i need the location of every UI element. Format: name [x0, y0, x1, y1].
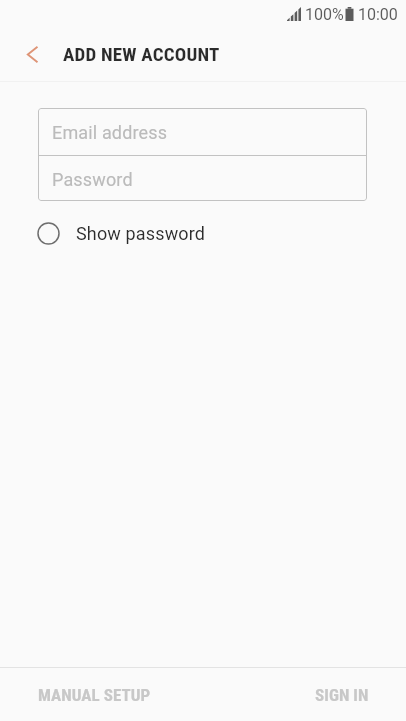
staticText: ADD NEW ACCOUNT — [63, 43, 220, 65]
button[interactable]: SIGN IN — [203, 668, 406, 721]
button[interactable]: MANUAL SETUP — [0, 668, 203, 721]
staticText: Email address — [52, 122, 168, 143]
button[interactable]: Show password — [37, 214, 406, 252]
staticText: Password — [52, 169, 133, 190]
staticText: 10:00 — [358, 5, 398, 24]
staticText: 100% — [305, 5, 344, 24]
staticText: Show password — [76, 223, 206, 244]
staticText: MANUAL SETUP — [38, 685, 151, 705]
staticText: SIGN IN — [315, 685, 369, 705]
button[interactable]: Email address — [38, 108, 367, 155]
button[interactable]: Password — [38, 156, 367, 201]
button[interactable]: Navigate back — [0, 28, 54, 81]
